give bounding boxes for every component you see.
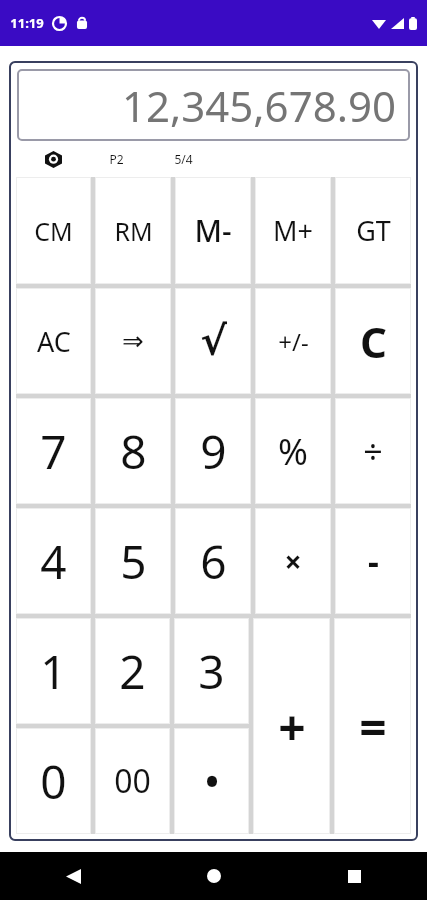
button[interactable]: 00 xyxy=(95,728,170,834)
staticText: √ xyxy=(200,318,227,365)
staticText: 6 xyxy=(200,530,227,593)
button[interactable]: 7 xyxy=(16,398,91,504)
button[interactable]: % xyxy=(255,398,331,504)
staticText: + xyxy=(278,694,306,759)
staticText: 9 xyxy=(200,420,227,483)
staticText: ⇒ xyxy=(122,326,144,356)
button[interactable]: - xyxy=(335,508,411,614)
button[interactable]: M- xyxy=(175,177,251,284)
button[interactable]: 8 xyxy=(95,398,171,504)
staticText: M+ xyxy=(273,212,313,249)
staticText: = xyxy=(359,694,387,759)
button[interactable]: C xyxy=(335,288,411,394)
button[interactable]: • xyxy=(174,728,249,834)
button[interactable]: √ xyxy=(175,288,251,394)
button[interactable]: 3 xyxy=(174,618,249,724)
staticText: CM xyxy=(34,214,73,248)
staticText: M- xyxy=(194,210,232,251)
button[interactable]: ⇒ xyxy=(95,288,171,394)
button[interactable]: AC xyxy=(16,288,91,394)
staticText: - xyxy=(368,538,379,584)
staticText: 5 xyxy=(120,530,147,593)
button[interactable]: 9 xyxy=(175,398,251,504)
staticText: 2 xyxy=(119,640,146,703)
staticText: 8 xyxy=(120,420,147,483)
staticText: • xyxy=(205,757,219,806)
staticText: × xyxy=(284,541,302,582)
staticText: RM xyxy=(114,214,153,248)
button[interactable]: = xyxy=(334,618,411,834)
staticText: +/- xyxy=(278,325,309,358)
button[interactable]: CM xyxy=(16,177,91,284)
staticText: GT xyxy=(356,212,391,249)
button[interactable]: +/- xyxy=(255,288,331,394)
button[interactable]: × xyxy=(255,508,331,614)
button[interactable]: 2 xyxy=(95,618,170,724)
button[interactable]: GT xyxy=(335,177,411,284)
button[interactable]: Home xyxy=(197,859,231,893)
button[interactable]: + xyxy=(253,618,330,834)
button[interactable]: Recent apps xyxy=(337,859,371,893)
staticText: 1 xyxy=(40,640,67,703)
button[interactable]: 5 xyxy=(95,508,171,614)
staticText: 3 xyxy=(198,640,225,703)
staticText: ÷ xyxy=(363,428,383,474)
staticText: 7 xyxy=(40,420,67,483)
staticText: 11:19 xyxy=(10,14,44,32)
staticText: 5/4 xyxy=(174,151,193,167)
staticText: 4 xyxy=(40,530,67,593)
button[interactable]: M+ xyxy=(255,177,331,284)
staticText: 12,345,678.90 xyxy=(121,77,396,134)
staticText: C xyxy=(360,313,387,370)
button[interactable]: RM xyxy=(95,177,171,284)
staticText: AC xyxy=(37,323,71,360)
button[interactable]: 0 xyxy=(16,728,91,834)
staticText: 00 xyxy=(114,759,151,803)
button[interactable]: 1 xyxy=(16,618,91,724)
staticText: % xyxy=(278,427,308,476)
staticText: P2 xyxy=(109,151,124,167)
staticText: 0 xyxy=(40,750,67,813)
button[interactable]: Back xyxy=(56,859,90,893)
button[interactable]: 6 xyxy=(175,508,251,614)
button[interactable]: ÷ xyxy=(335,398,411,504)
button[interactable]: 4 xyxy=(16,508,91,614)
